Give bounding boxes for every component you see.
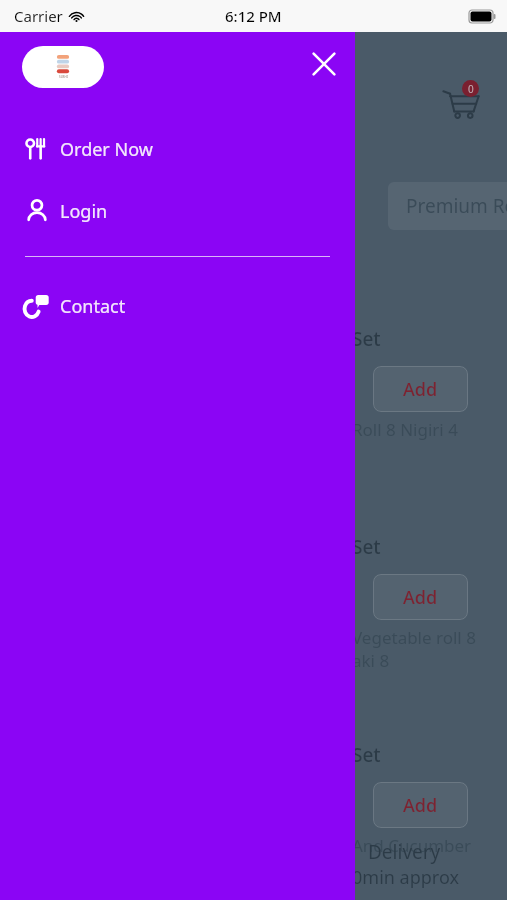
staticText: Set bbox=[352, 326, 381, 352]
staticText: Premium Roll bbox=[406, 193, 507, 219]
staticText: Delivery bbox=[368, 839, 441, 865]
staticText: Add bbox=[403, 793, 438, 818]
button[interactable]: SUSHI bbox=[22, 46, 104, 88]
staticText: Set bbox=[352, 534, 381, 560]
staticText: Vegetable roll 8 bbox=[352, 626, 476, 649]
staticText: Roll 8 Nigiri 4 bbox=[352, 418, 458, 441]
staticText: Add bbox=[403, 585, 438, 610]
staticText: And Cucumber bbox=[352, 834, 472, 857]
staticText: 6:12 PM bbox=[225, 6, 282, 26]
button[interactable]: Contact bbox=[0, 289, 355, 323]
staticText: Add bbox=[403, 377, 438, 402]
staticText: Set bbox=[352, 742, 381, 768]
staticText: 0min approx bbox=[352, 865, 459, 890]
staticText: Contact bbox=[60, 294, 126, 319]
button[interactable]: Premium Roll bbox=[388, 182, 507, 230]
button[interactable]: Cart bbox=[440, 82, 488, 130]
button[interactable]: Login bbox=[0, 194, 355, 228]
button[interactable]: Order Now bbox=[0, 132, 355, 166]
staticText: Carrier bbox=[14, 6, 63, 26]
button[interactable]: Add bbox=[373, 366, 468, 412]
staticText: 0 bbox=[468, 82, 474, 96]
staticText: Order Now bbox=[60, 137, 153, 162]
button[interactable]: Add bbox=[373, 782, 468, 828]
staticText: Login bbox=[60, 199, 108, 224]
staticText: aki 8 bbox=[352, 649, 390, 672]
button[interactable]: Add bbox=[373, 574, 468, 620]
button[interactable]: Close menu bbox=[300, 40, 348, 88]
staticText: SUSHI bbox=[59, 75, 68, 79]
